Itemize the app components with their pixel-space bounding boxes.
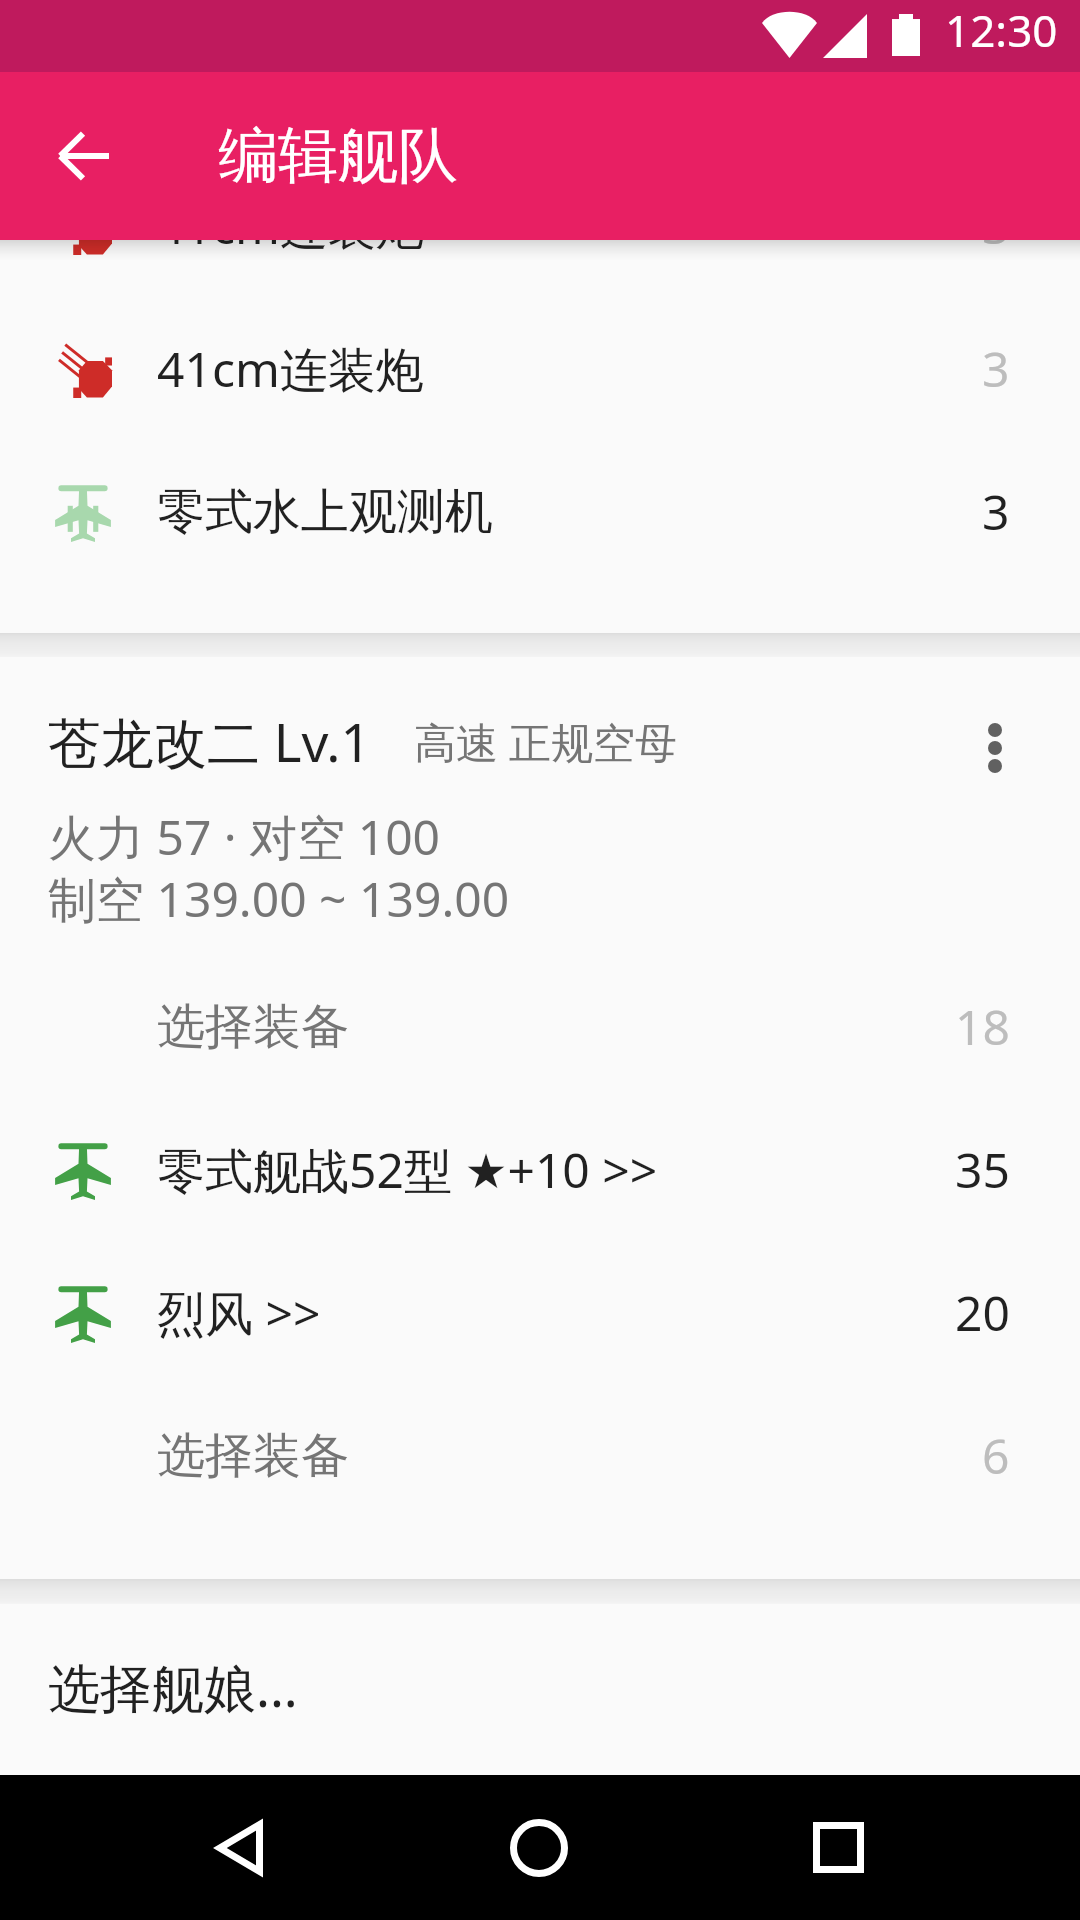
staticText: 制空 139.00 ~ 139.00 (48, 866, 510, 932)
button[interactable]: Home (466, 1775, 611, 1920)
button[interactable]: Back (33, 106, 133, 206)
staticText: 41cm连装炮 (157, 240, 982, 259)
staticText: 火力 57 · 对空 100 (48, 804, 441, 870)
staticText: 烈风 >> (157, 1280, 955, 1346)
button[interactable]: 选择装备 (0, 1384, 1080, 1527)
staticText: 编辑舰队 (218, 118, 458, 194)
button[interactable]: Recent apps (766, 1775, 911, 1920)
staticText: 41cm连装炮 (157, 336, 982, 402)
button[interactable]: Back (166, 1775, 311, 1920)
staticText: 18 (955, 994, 1010, 1059)
staticText: 20 (955, 1280, 1010, 1345)
button[interactable]: 选择装备 (0, 955, 1080, 1098)
staticText: 6 (982, 1423, 1010, 1488)
staticText: 零式水上观测机 (157, 482, 982, 542)
staticText: 12:30 (945, 0, 1058, 58)
button[interactable]: 零式水上观测机 (0, 440, 1080, 583)
button[interactable]: 41cm连装炮 (0, 240, 1080, 297)
staticText: 3 (982, 336, 1010, 401)
staticText: 选择装备 (157, 1426, 982, 1486)
staticText: 选择舰娘... (48, 1651, 298, 1722)
staticText: 3 (982, 479, 1010, 544)
staticText: 苍龙改二 Lv.1 (48, 705, 371, 777)
staticText: 选择装备 (157, 997, 955, 1057)
button[interactable]: More options (960, 688, 1030, 808)
staticText: 35 (955, 1137, 1010, 1202)
button[interactable]: 选择舰娘... (0, 1604, 1080, 1775)
button[interactable]: 41cm连装炮 (0, 297, 1080, 440)
staticText: 零式舰战52型 ★+10 >> (157, 1137, 955, 1203)
staticText: 高速 正规空母 (414, 713, 677, 770)
button[interactable]: 烈风 >> (0, 1241, 1080, 1384)
button[interactable]: 零式舰战52型 ★+10 >> (0, 1098, 1080, 1241)
staticText: 3 (982, 240, 1010, 258)
